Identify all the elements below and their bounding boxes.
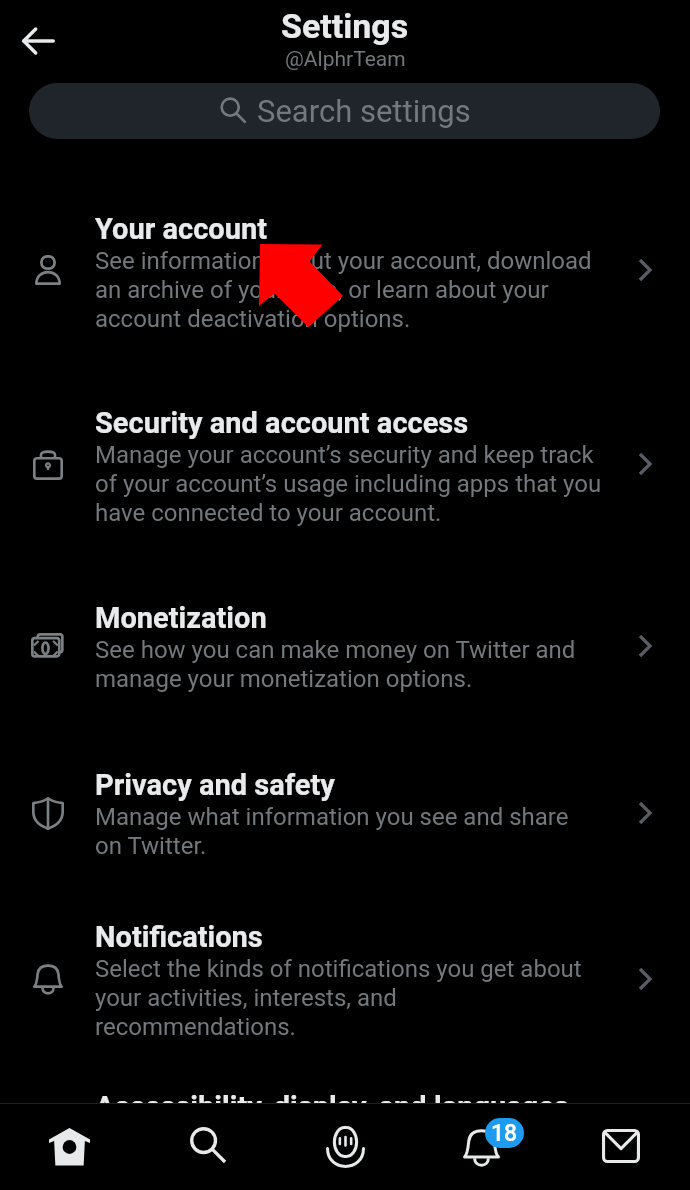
staticText: Security and account access [95, 406, 469, 440]
button[interactable]: Search [138, 1104, 276, 1190]
button[interactable]: Security and account access [0, 406, 690, 601]
staticText: Notifications [95, 920, 263, 954]
staticText: Manage your account’s security and keep … [95, 440, 602, 527]
button[interactable]: Spaces [276, 1104, 414, 1190]
button[interactable]: Monetization [0, 601, 690, 768]
staticText: Monetization [95, 601, 267, 635]
button[interactable]: Back [10, 12, 66, 68]
button[interactable]: Privacy and safety [0, 768, 690, 920]
staticText: Privacy and safety [95, 768, 335, 802]
staticText: Your account [95, 212, 267, 246]
staticText: Accessibility, display, and languages [95, 1090, 569, 1124]
button[interactable]: Accessibility, display, and languages [0, 1090, 690, 1190]
button[interactable]: Messages [552, 1104, 690, 1190]
staticText: Search settings [257, 93, 471, 129]
staticText: Settings [281, 6, 409, 46]
staticText: Manage what information you see and shar… [95, 802, 569, 860]
button[interactable]: Home [0, 1104, 138, 1190]
button[interactable]: Notifications [414, 1104, 552, 1190]
button[interactable]: Notifications [0, 920, 690, 1090]
staticText: Manage how Twitter content is displayed … [95, 1124, 558, 1182]
staticText: @AlphrTeam [285, 47, 406, 72]
staticText: Select the kinds of notifications you ge… [95, 954, 582, 1041]
button[interactable]: Search settings [29, 83, 660, 139]
button[interactable]: Your account [0, 212, 690, 406]
staticText: See information about your account, down… [95, 246, 592, 333]
staticText: See how you can make money on Twitter an… [95, 635, 576, 693]
staticText: 18 [491, 1120, 518, 1147]
